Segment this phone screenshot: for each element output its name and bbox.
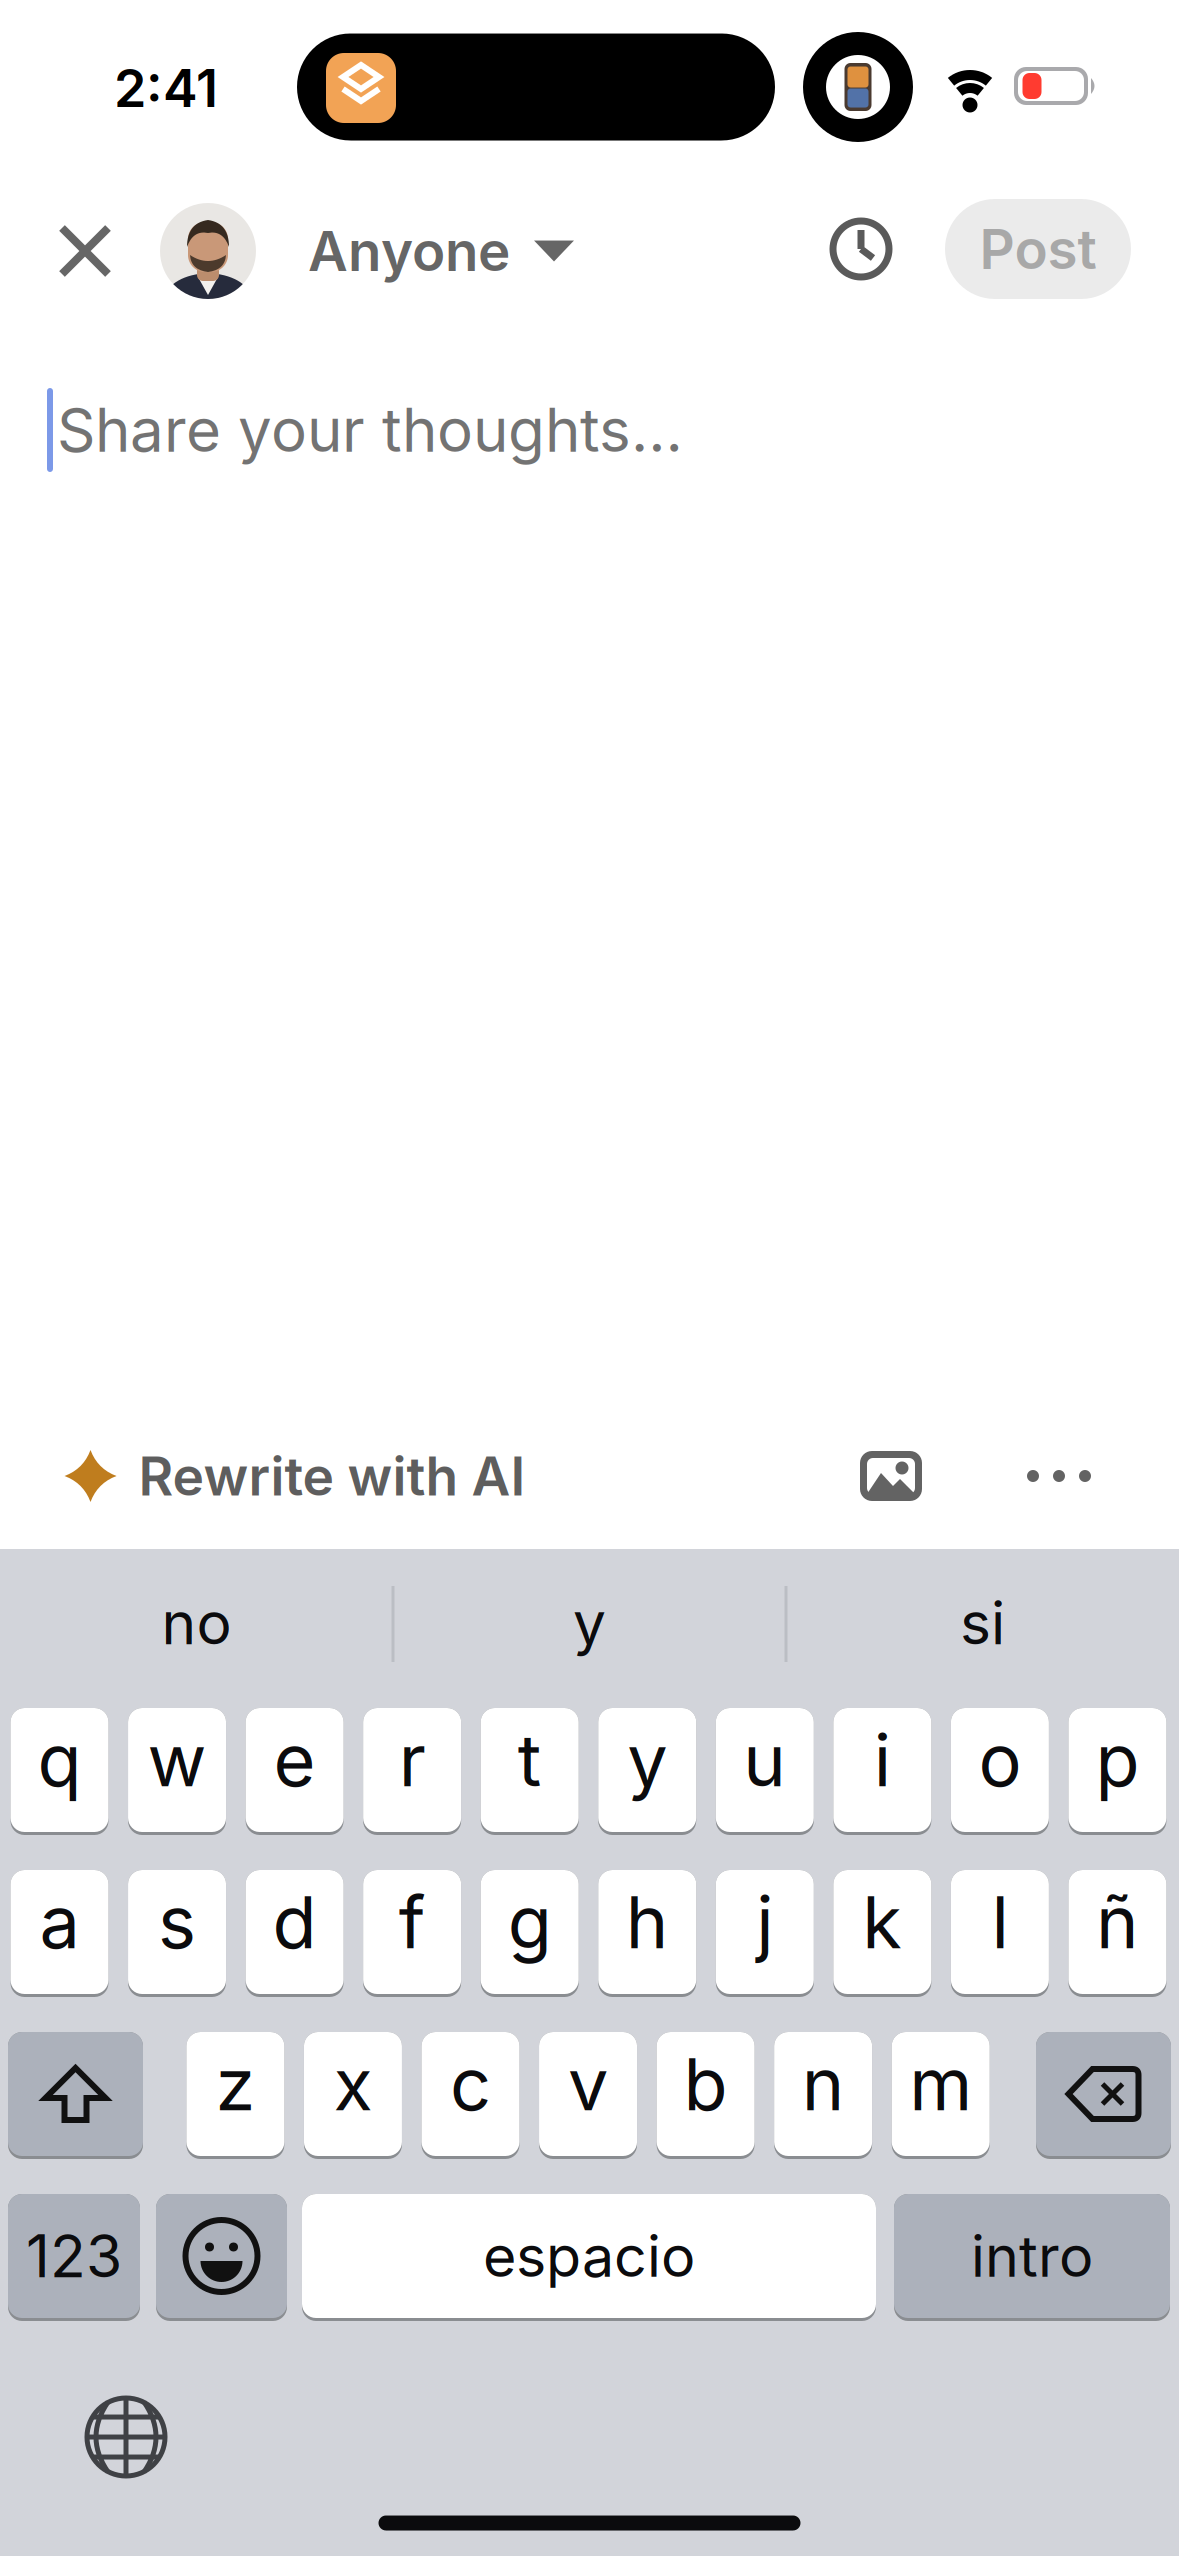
button[interactable]: Schedule post — [829, 217, 893, 281]
staticText: t — [518, 1717, 542, 1802]
staticText: s — [158, 1879, 196, 1964]
staticText: intro — [971, 2222, 1093, 2290]
staticText: k — [862, 1879, 902, 1964]
button[interactable]: More options — [1027, 1470, 1091, 1482]
staticText: o — [978, 1717, 1021, 1802]
staticText: d — [273, 1879, 317, 1964]
button[interactable]: l — [951, 1870, 1049, 1997]
staticText: no — [161, 1588, 231, 1658]
button[interactable]: o — [951, 1708, 1049, 1835]
staticText: m — [909, 2041, 972, 2126]
button[interactable]: u — [716, 1708, 814, 1835]
staticText: w — [148, 1717, 207, 1802]
staticText: f — [399, 1879, 426, 1964]
button[interactable]: 123 — [8, 2194, 140, 2321]
staticText: e — [274, 1717, 316, 1802]
button[interactable]: i — [833, 1708, 931, 1835]
staticText: y — [627, 1717, 667, 1802]
button[interactable]: c — [421, 2032, 519, 2159]
button[interactable]: no — [6, 1568, 386, 1678]
staticText: 2:41 — [114, 57, 218, 119]
staticText: h — [626, 1879, 669, 1964]
button[interactable]: r — [363, 1708, 461, 1835]
staticText: n — [802, 2041, 845, 2126]
staticText: g — [508, 1879, 552, 1964]
button[interactable]: k — [833, 1870, 931, 1997]
button[interactable]: y — [399, 1568, 779, 1678]
button[interactable]: x — [304, 2032, 402, 2159]
button[interactable]: b — [657, 2032, 755, 2159]
button[interactable]: h — [598, 1870, 696, 1997]
staticText: Post — [979, 217, 1096, 281]
button[interactable]: espacio — [302, 2194, 876, 2321]
button[interactable]: Next keyboard — [84, 2395, 168, 2479]
button[interactable]: Delete — [1036, 2032, 1171, 2159]
staticText: q — [37, 1717, 81, 1802]
button[interactable]: w — [128, 1708, 226, 1835]
button[interactable]: y — [598, 1708, 696, 1835]
staticText: l — [991, 1879, 1008, 1964]
staticText: u — [743, 1717, 786, 1802]
staticText: a — [39, 1879, 79, 1964]
button[interactable]: m — [892, 2032, 990, 2159]
button[interactable]: d — [246, 1870, 344, 1997]
staticText: v — [568, 2041, 608, 2126]
staticText: si — [960, 1588, 1005, 1658]
staticText: j — [756, 1879, 773, 1964]
button[interactable]: t — [481, 1708, 579, 1835]
staticText: espacio — [483, 2222, 695, 2290]
staticText: 123 — [26, 2221, 122, 2291]
button[interactable]: Emoji — [156, 2194, 287, 2321]
button[interactable]: Shift — [8, 2032, 143, 2159]
button[interactable]: Post — [945, 199, 1131, 299]
button[interactable]: j — [716, 1870, 814, 1997]
button[interactable]: v — [539, 2032, 637, 2159]
staticText: b — [684, 2041, 728, 2126]
button[interactable]: intro — [894, 2194, 1170, 2321]
button[interactable]: a — [10, 1870, 108, 1997]
staticText: z — [215, 2041, 255, 2126]
staticText: Rewrite with AI — [138, 1444, 525, 1507]
button[interactable]: Add photo — [860, 1451, 922, 1501]
staticText: p — [1095, 1717, 1139, 1802]
button[interactable]: Rewrite with AI — [64, 1444, 525, 1507]
staticText: i — [874, 1717, 891, 1802]
staticText: Anyone — [308, 219, 510, 283]
button[interactable]: Post visibility: Anyone — [160, 203, 574, 299]
staticText: ñ — [1096, 1879, 1139, 1964]
button[interactable]: ñ — [1068, 1870, 1166, 1997]
staticText: Share your thoughts… — [57, 395, 683, 465]
staticText: y — [573, 1588, 606, 1658]
button[interactable]: q — [10, 1708, 108, 1835]
button[interactable]: si — [792, 1568, 1172, 1678]
button[interactable]: Close — [45, 211, 125, 291]
staticText: c — [450, 2041, 491, 2126]
button[interactable]: z — [186, 2032, 284, 2159]
button[interactable]: f — [363, 1870, 461, 1997]
button[interactable]: g — [481, 1870, 579, 1997]
button[interactable]: s — [128, 1870, 226, 1997]
button[interactable]: e — [246, 1708, 344, 1835]
staticText: x — [333, 2041, 372, 2126]
button[interactable]: n — [774, 2032, 872, 2159]
staticText: r — [399, 1717, 426, 1802]
button[interactable]: p — [1068, 1708, 1166, 1835]
